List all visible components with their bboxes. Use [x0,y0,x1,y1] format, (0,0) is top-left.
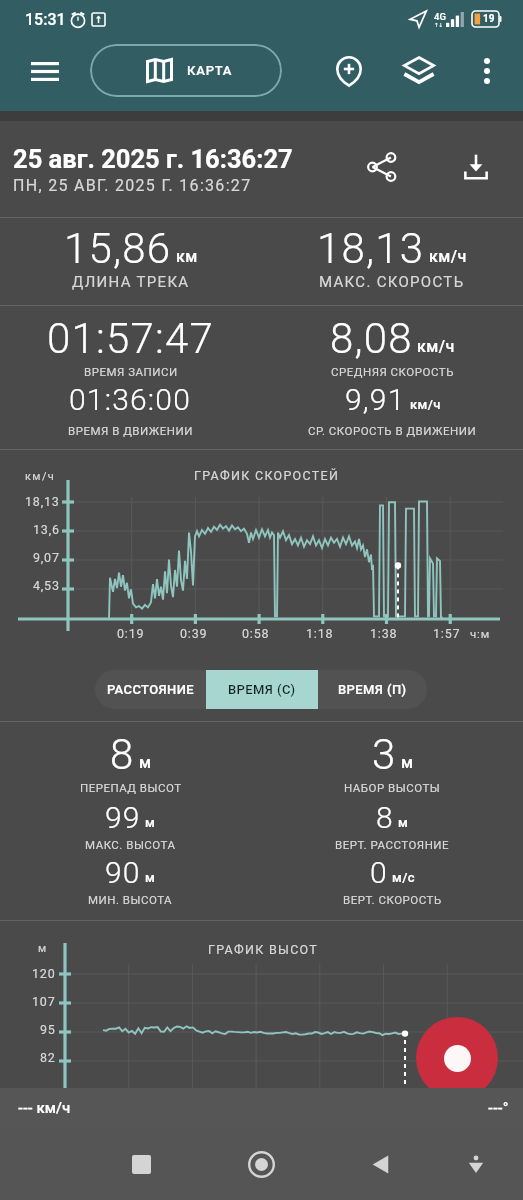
button[interactable]: Menu [21,47,69,95]
staticText: МИН. ВЫСОТА [88,893,173,906]
staticText: 9,91 [345,382,406,417]
staticText: км/ч [429,247,467,266]
button[interactable]: Recent apps [117,1140,165,1188]
staticText: 8,08 [330,314,413,363]
staticText: 0:39 [180,626,208,641]
staticText: ДЛИНА ТРЕКА [72,273,190,291]
staticText: СР. СКОРОСТЬ В ДВИЖЕНИИ [308,424,477,437]
button[interactable]: 25 авг. 2025 г. 16:36:27 [0,121,523,217]
staticText: м [145,870,156,885]
staticText: 01:36:00 [69,382,192,417]
button[interactable]: 8,08 [261,306,523,449]
staticText: 99 [105,800,141,835]
button[interactable]: More options [463,47,511,95]
staticText: 3 [372,730,397,779]
staticText: ПЕРЕПАД ВЫСОТ [80,781,182,794]
staticText: ---° [488,1099,509,1117]
button[interactable]: 8 [0,722,261,920]
staticText: 0:58 [242,626,270,641]
staticText: 90 [105,855,141,890]
staticText: м/с [392,870,415,885]
staticText: --- км/ч [18,1099,71,1117]
button[interactable]: Back [357,1140,405,1188]
staticText: 15,86 [64,224,172,273]
staticText: 8 [376,800,394,835]
button[interactable]: ВРЕМЯ (П) [318,670,427,709]
button[interactable]: РАССТОЯНИЕ [95,670,206,709]
staticText: ПН, 25 АВГ. 2025 Г. 16:36:27 [13,176,252,195]
staticText: НАБОР ВЫСОТЫ [344,781,441,794]
staticText: 18,13 [317,224,425,273]
staticText: СРЕДНЯЯ СКОРОСТЬ [331,365,454,378]
button[interactable]: Home [237,1140,285,1188]
staticText: ↑↓ [434,22,444,28]
staticText: ВЕРТ. СКОРОСТЬ [343,893,442,906]
staticText: 95 [40,1022,56,1037]
staticText: ч:м [470,627,490,640]
button[interactable]: Layers [395,47,443,95]
staticText: ГРАФИК ВЫСОТ [208,942,319,957]
button[interactable]: 15,86 [0,218,261,305]
staticText: 4,53 [33,578,60,593]
staticText: 9,07 [33,550,60,565]
staticText: км/ч [25,470,56,483]
button[interactable]: Download [450,141,502,193]
button[interactable]: КАРТА [90,44,282,97]
staticText: 1:57 [433,626,461,641]
staticText: км/ч [410,397,441,412]
staticText: 19 [483,13,495,25]
button[interactable]: 18,13 [261,218,523,305]
staticText: 82 [40,1050,56,1065]
button[interactable]: Add marker [325,47,373,95]
staticText: м [145,815,156,830]
staticText: ВРЕМЯ ЗАПИСИ [84,365,178,378]
staticText: 0 [370,855,388,890]
staticText: 25 авг. 2025 г. 16:36:27 [13,144,293,174]
staticText: м [139,753,152,772]
staticText: ВРЕМЯ (С) [228,682,296,697]
button[interactable]: 01:57:47 [0,306,261,449]
button[interactable]: Hide keyboard [452,1140,500,1188]
staticText: 15:31 [25,10,66,29]
staticText: 1:18 [306,626,334,641]
staticText: м [38,942,47,955]
staticText: км/ч [417,337,455,356]
staticText: 8 [110,730,135,779]
staticText: 107 [32,994,56,1009]
staticText: 120 [32,966,56,981]
button[interactable]: Record [416,1017,498,1099]
staticText: 0:19 [117,626,145,641]
button[interactable]: 3 [261,722,523,920]
staticText: м [401,753,414,772]
staticText: 4G [434,11,446,22]
staticText: ГРАФИК СКОРОСТЕЙ [194,468,340,483]
staticText: м [398,815,409,830]
staticText: ВРЕМЯ (П) [338,682,407,697]
staticText: 1:38 [370,626,398,641]
staticText: 01:57:47 [47,314,215,363]
staticText: ВЕРТ. РАССТОЯНИЕ [335,838,450,851]
staticText: КАРТА [187,63,233,78]
button[interactable]: Share [356,141,408,193]
staticText: МАКС. СКОРОСТЬ [319,273,465,291]
staticText: ВРЕМЯ В ДВИЖЕНИИ [68,424,193,437]
staticText: 13,6 [33,522,60,537]
button[interactable]: ВРЕМЯ (С) [206,670,318,709]
staticText: км [176,247,198,266]
staticText: 18,13 [25,494,60,509]
staticText: РАССТОЯНИЕ [107,682,195,697]
staticText: МАКС. ВЫСОТА [85,838,176,851]
